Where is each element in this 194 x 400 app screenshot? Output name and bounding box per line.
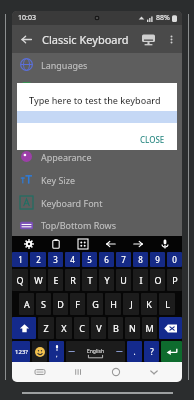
staticText: Predictions & Corrections: [41, 82, 149, 94]
staticText: B: [113, 322, 119, 334]
button[interactable]: P: [167, 269, 182, 291]
button[interactable]: Hide keyboard: [144, 362, 164, 382]
button[interactable]: D: [53, 293, 68, 315]
button[interactable]: Languages: [12, 53, 182, 76]
staticText: 1: [18, 254, 23, 265]
button[interactable]: Settings: [19, 236, 39, 252]
button[interactable]: 5: [82, 252, 97, 267]
staticText: 2: [36, 254, 41, 265]
button[interactable]: Keyboard: [136, 27, 160, 51]
button[interactable]: 1: [12, 252, 28, 267]
button[interactable]: G: [87, 293, 103, 315]
button[interactable]: English: [66, 341, 125, 362]
button[interactable]: Backspace: [159, 317, 182, 339]
button[interactable]: Top/Bottom Rows: [12, 214, 182, 236]
staticText: X: [61, 322, 67, 334]
staticText: C: [79, 322, 85, 334]
button[interactable]: R: [65, 269, 80, 291]
button[interactable]: Move right: [128, 236, 148, 252]
staticText: I: [139, 274, 143, 286]
button[interactable]: Voice and comma: [49, 341, 64, 362]
button[interactable]: Appearance: [12, 145, 182, 168]
button[interactable]: Clipboard: [46, 236, 66, 252]
button[interactable]: 3: [48, 252, 63, 267]
button[interactable]: Enter: [161, 341, 182, 362]
button[interactable]: M: [142, 317, 157, 339]
button[interactable]: J: [123, 293, 139, 315]
staticText: D: [57, 298, 64, 310]
staticText: H: [110, 298, 117, 310]
button[interactable]: L: [159, 293, 175, 315]
staticText: Key Size: [41, 174, 75, 186]
button[interactable]: 2: [30, 252, 46, 267]
staticText: .: [133, 346, 136, 357]
button[interactable]: X: [56, 317, 72, 339]
button[interactable]: Voice input: [155, 236, 175, 252]
staticText: 10:03: [18, 13, 36, 23]
button[interactable]: V: [91, 317, 106, 339]
button[interactable]: O: [150, 269, 165, 291]
staticText: 0: [172, 254, 177, 265]
button[interactable]: Apps: [73, 236, 93, 252]
button[interactable]: Theme: [12, 122, 182, 145]
staticText: 4: [70, 254, 75, 265]
button[interactable]: Recents: [68, 362, 88, 382]
staticText: 88%: [156, 13, 170, 23]
button[interactable]: N: [125, 317, 140, 339]
button[interactable]: 123?: [12, 341, 30, 362]
button[interactable]: 4: [65, 252, 80, 267]
button[interactable]: Back: [16, 29, 36, 49]
button[interactable]: W: [30, 269, 46, 291]
button[interactable]: Move left: [101, 236, 121, 252]
button[interactable]: Q: [12, 269, 28, 291]
button[interactable]: U: [116, 269, 131, 291]
button[interactable]: .: [127, 341, 142, 362]
button[interactable]: Gestures: [12, 99, 182, 122]
button[interactable]: 0: [167, 252, 182, 267]
button[interactable]: C: [74, 317, 89, 339]
button[interactable]: K: [141, 293, 157, 315]
staticText: N: [129, 322, 136, 334]
button[interactable]: Switch keyboard: [30, 362, 50, 382]
staticText: W: [34, 274, 43, 286]
button[interactable]: Y: [99, 269, 114, 291]
button[interactable]: S: [36, 293, 51, 315]
button[interactable]: Predictions & Corrections: [12, 76, 182, 99]
staticText: 9: [155, 254, 160, 265]
staticText: R: [70, 274, 76, 286]
button[interactable]: T: [82, 269, 97, 291]
staticText: English: [87, 348, 105, 355]
staticText: ?: [150, 346, 154, 357]
button[interactable]: 7: [116, 252, 131, 267]
button[interactable]: Keyboard Font: [12, 191, 182, 214]
staticText: Gestures: [41, 105, 79, 117]
staticText: 8: [138, 254, 143, 265]
staticText: Type here to test the keyboard: [29, 94, 161, 106]
staticText: 5: [87, 254, 92, 265]
button[interactable]: B: [108, 317, 123, 339]
button[interactable]: H: [105, 293, 121, 315]
staticText: U: [120, 274, 127, 286]
button[interactable]: 9: [150, 252, 165, 267]
button[interactable]: Shift: [12, 317, 36, 339]
staticText: J: [130, 298, 133, 310]
button[interactable]: I: [133, 269, 148, 291]
button[interactable]: E: [48, 269, 63, 291]
button[interactable]: Key Size: [12, 168, 182, 191]
button[interactable]: Emoji: [32, 341, 47, 362]
button[interactable]: Z: [38, 317, 54, 339]
staticText: 123?: [15, 348, 28, 356]
button[interactable]: A: [19, 293, 34, 315]
button[interactable]: ?: [144, 341, 159, 362]
staticText: G: [92, 298, 99, 310]
staticText: L: [165, 298, 170, 310]
button[interactable]: CLOSE: [128, 129, 177, 150]
button[interactable]: More options: [160, 28, 182, 50]
button[interactable]: 6: [99, 252, 114, 267]
staticText: Appearance: [41, 151, 92, 163]
staticText: Languages: [41, 59, 88, 71]
button[interactable]: F: [70, 293, 85, 315]
button[interactable]: 8: [133, 252, 148, 267]
button[interactable]: Home: [106, 362, 126, 382]
